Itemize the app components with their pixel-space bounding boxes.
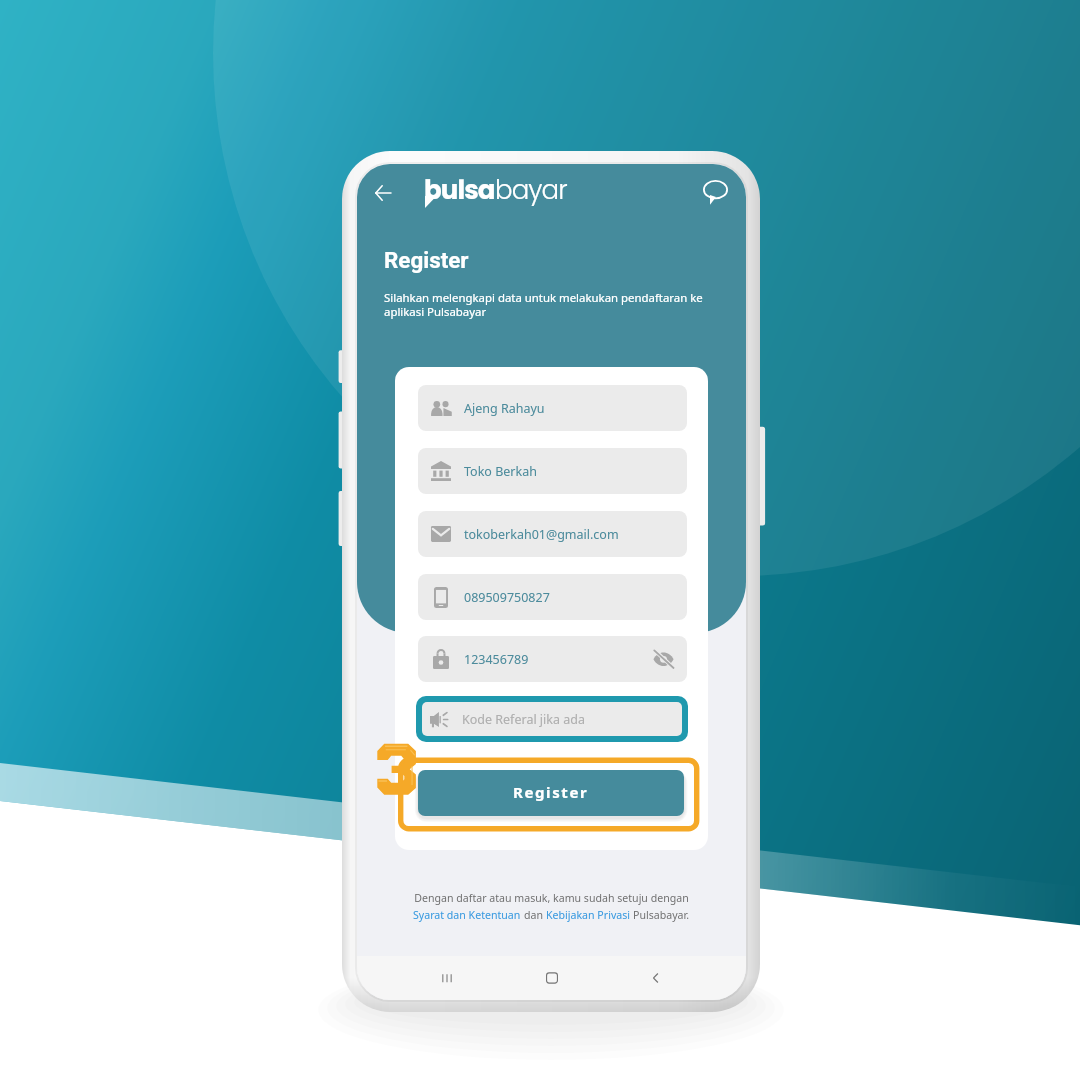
button[interactable]: Register [418,770,684,816]
button[interactable]: Toko Berkah [418,448,687,494]
staticText: bulsa [424,172,495,208]
staticText: Kode Referal jika ada [462,711,585,728]
button[interactable]: 123456789 [418,636,687,682]
staticText: tokoberkah01@gmail.com [464,526,619,543]
staticText: dan [524,908,546,922]
button[interactable]: Kebijakan Privasi [546,908,633,922]
button[interactable]: Chat [699,176,732,209]
button[interactable]: Kode Referal jika ada [422,702,682,736]
staticText: Register [513,782,589,802]
button[interactable]: Home [537,963,567,993]
staticText: Toko Berkah [464,463,537,480]
button[interactable]: Ajeng Rahayu [418,385,687,431]
staticText: 123456789 [464,651,529,668]
button[interactable]: 089509750827 [418,574,687,620]
staticText: 089509750827 [464,589,550,606]
staticText: Ajeng Rahayu [464,400,545,417]
button[interactable]: Back [369,179,397,207]
staticText: Register [384,247,469,273]
button[interactable]: tokoberkah01@gmail.com [418,511,687,557]
staticText: Dengan daftar atau masuk, kamu sudah set… [414,891,689,905]
staticText: Pulsabayar. [633,908,690,922]
button[interactable]: Toggle password visibility [650,646,676,672]
staticText: Silahkan melengkapi data untuk melakukan… [384,290,703,319]
button[interactable]: Back [641,963,671,993]
button[interactable]: Recents [432,963,462,993]
staticText: bayar [495,172,567,208]
button[interactable]: Syarat dan Ketentuan [413,908,524,922]
